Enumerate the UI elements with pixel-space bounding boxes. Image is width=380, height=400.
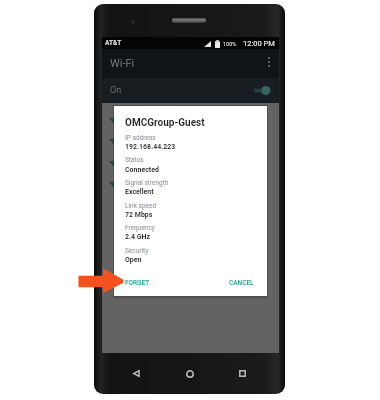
staticText: IP address xyxy=(125,134,156,142)
staticText: Frequency xyxy=(125,224,155,232)
staticText: 100% xyxy=(223,41,237,47)
staticText: OMCGroup-Guest xyxy=(125,117,205,128)
button[interactable] xyxy=(109,152,279,174)
staticText: 12:00 PM xyxy=(243,39,275,48)
staticText: CANCEL xyxy=(229,279,254,287)
button[interactable] xyxy=(109,130,279,152)
staticText: Connected xyxy=(125,166,159,174)
staticText: 2.4 GHz xyxy=(125,233,151,241)
staticText: Excellent xyxy=(125,188,154,196)
button[interactable]: On xyxy=(102,78,279,103)
staticText: Status xyxy=(125,156,144,164)
staticText: Security xyxy=(125,247,149,255)
button[interactable]: Home xyxy=(182,366,197,381)
button[interactable] xyxy=(109,109,279,131)
staticText: 192.168.44.223 xyxy=(125,143,176,151)
button[interactable]: CANCEL xyxy=(226,276,257,290)
staticText: Open xyxy=(125,256,142,264)
staticText: On xyxy=(110,85,122,96)
staticText: 72 Mbps xyxy=(125,211,153,219)
button[interactable]: More options xyxy=(259,47,279,76)
button[interactable] xyxy=(109,173,279,195)
staticText: AT&T xyxy=(105,39,122,47)
button[interactable]: FORGET xyxy=(122,276,153,290)
staticText: Signal strength xyxy=(125,179,169,187)
staticText: Wi-Fi xyxy=(110,57,135,70)
button[interactable] xyxy=(109,216,279,238)
staticText: Link speed xyxy=(125,202,157,210)
button[interactable]: Back xyxy=(128,366,143,381)
staticText: FORGET xyxy=(125,279,150,287)
button[interactable]: Recent apps xyxy=(235,366,250,381)
button[interactable] xyxy=(109,195,279,217)
